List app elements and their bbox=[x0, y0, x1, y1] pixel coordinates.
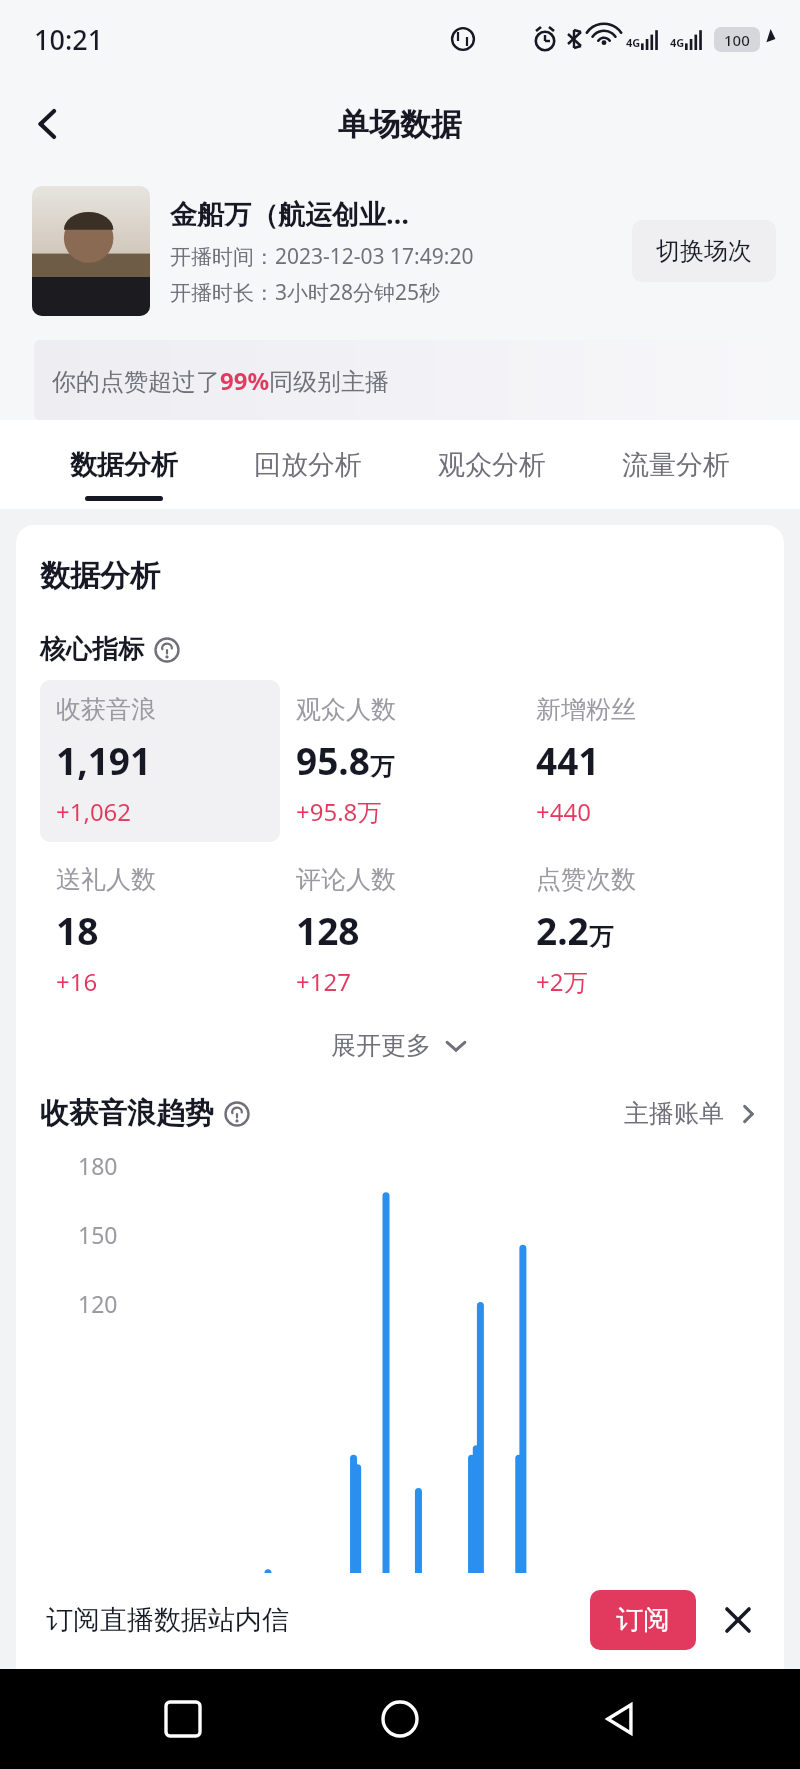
staticText: 441 bbox=[536, 735, 600, 785]
staticText: 150 bbox=[78, 1219, 118, 1250]
button[interactable]: 新增粉丝 bbox=[520, 680, 760, 842]
button[interactable]: 观众人数 bbox=[280, 680, 520, 842]
button[interactable]: 送礼人数 bbox=[40, 850, 280, 1012]
button[interactable]: 观众分析 bbox=[432, 448, 552, 501]
staticText: 4G bbox=[626, 35, 641, 50]
button[interactable]: 切换场次 bbox=[632, 220, 776, 282]
button[interactable]: Home bbox=[365, 1684, 435, 1754]
staticText: 18 bbox=[56, 905, 99, 955]
button[interactable]: 点赞次数 bbox=[520, 850, 760, 1012]
button[interactable]: Back bbox=[583, 1684, 653, 1754]
staticText: 展开更多 bbox=[331, 1030, 431, 1061]
button[interactable]: Recents bbox=[148, 1684, 218, 1754]
button[interactable]: 收获音浪 bbox=[40, 680, 280, 842]
staticText: 订阅 bbox=[616, 1603, 670, 1637]
staticText: 120 bbox=[78, 1288, 118, 1319]
staticText: 128 bbox=[296, 905, 360, 955]
staticText: 100 bbox=[724, 30, 750, 50]
button[interactable]: 展开更多 bbox=[40, 1030, 760, 1061]
staticText: 30 bbox=[78, 1608, 105, 1639]
staticText: 点赞次数 bbox=[536, 864, 636, 895]
staticText: 数据分析 bbox=[70, 448, 178, 482]
staticText: 你的点赞超过了99%同级别主播 bbox=[52, 364, 390, 397]
staticText: 10:21 bbox=[34, 21, 104, 58]
staticText: 开播时间：2023-12-03 17:49:20 bbox=[170, 242, 474, 271]
button[interactable]: Help bbox=[224, 1101, 250, 1127]
staticText: 开播时长：3小时28分钟25秒 bbox=[170, 278, 441, 307]
staticText: 金船万（航运创业… bbox=[170, 195, 410, 232]
staticText: 180 bbox=[78, 1150, 118, 1181]
button[interactable]: Help bbox=[154, 637, 180, 663]
staticText: 评论人数 bbox=[296, 864, 396, 895]
button[interactable]: Back bbox=[18, 94, 78, 154]
staticText: 回放分析 bbox=[254, 448, 362, 482]
staticText: 收获音浪趋势 bbox=[40, 1095, 214, 1132]
staticText: +95.8万 bbox=[296, 795, 382, 828]
button[interactable]: 流量分析 bbox=[616, 448, 736, 501]
staticText: 核心指标 bbox=[40, 633, 144, 666]
staticText: 主播账单 bbox=[624, 1098, 724, 1129]
staticText: +127 bbox=[296, 965, 351, 998]
staticText: +2万 bbox=[536, 965, 588, 998]
staticText: 2.2 bbox=[536, 905, 589, 955]
button[interactable]: Close bbox=[714, 1596, 762, 1644]
staticText: 数据分析 bbox=[40, 557, 160, 595]
staticText: 收获音浪 bbox=[56, 694, 156, 725]
staticText: 订阅直播数据站内信 bbox=[46, 1603, 289, 1637]
button[interactable]: 回放分析 bbox=[248, 448, 368, 501]
staticText: 万 bbox=[589, 922, 613, 952]
staticText: +1,062 bbox=[56, 795, 132, 828]
staticText: 新增粉丝 bbox=[536, 694, 636, 725]
button[interactable]: 订阅 bbox=[590, 1590, 696, 1650]
button[interactable]: 你的点赞超过了99%同级别主播 bbox=[34, 340, 766, 420]
staticText: 4G bbox=[670, 35, 685, 50]
staticText: 送礼人数 bbox=[56, 864, 156, 895]
staticText: 流量分析 bbox=[622, 448, 730, 482]
button[interactable]: 数据分析 bbox=[64, 448, 184, 501]
staticText: 切换场次 bbox=[656, 236, 752, 266]
staticText: 95.8 bbox=[296, 735, 370, 785]
staticText: 1,191 bbox=[56, 735, 152, 785]
staticText: 万 bbox=[370, 752, 394, 782]
staticText: 观众人数 bbox=[296, 694, 396, 725]
staticText: 观众分析 bbox=[438, 448, 546, 482]
staticText: +16 bbox=[56, 965, 98, 998]
staticText: 单场数据 bbox=[338, 105, 462, 144]
button[interactable]: 主播账单 bbox=[624, 1098, 760, 1129]
button[interactable]: 评论人数 bbox=[280, 850, 520, 1012]
staticText: +440 bbox=[536, 795, 591, 828]
